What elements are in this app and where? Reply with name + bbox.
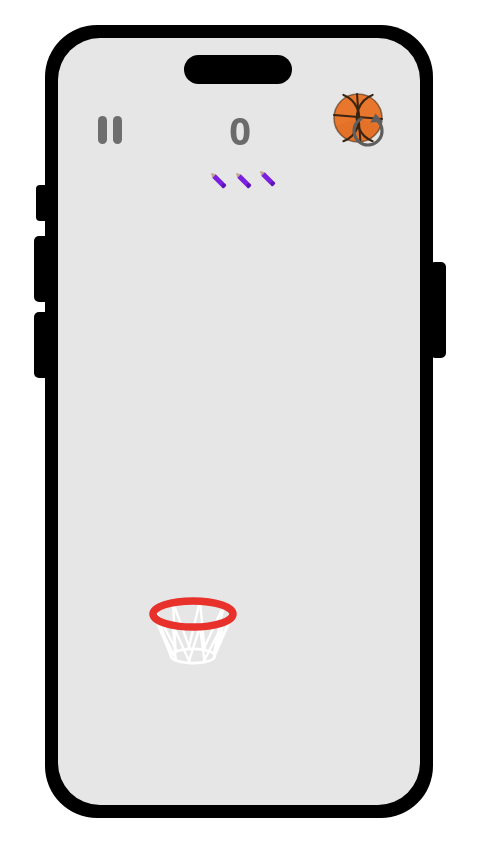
staticText: 0: [229, 104, 251, 154]
button[interactable]: Restart game: [332, 88, 388, 144]
button[interactable]: Pause: [86, 108, 130, 152]
